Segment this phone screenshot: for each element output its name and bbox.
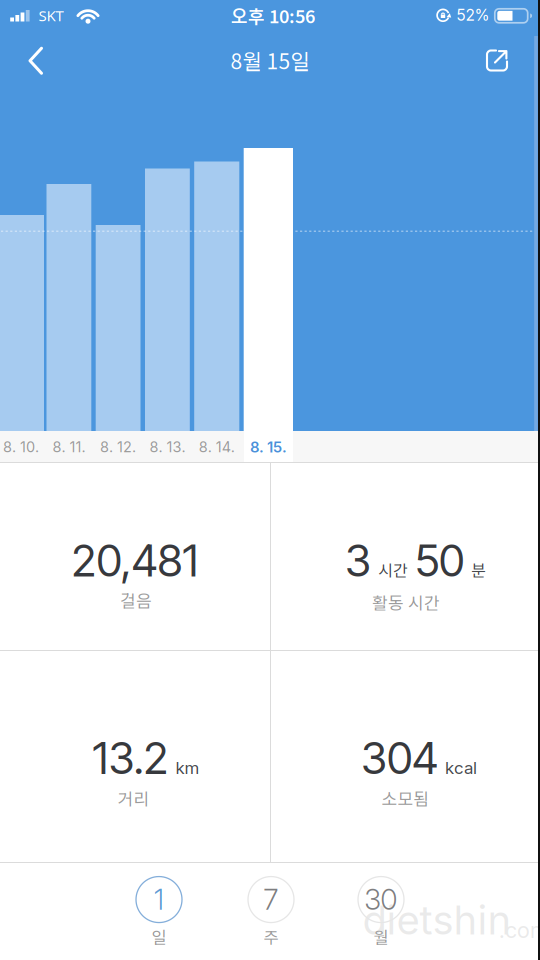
button[interactable]: 8. 13. (149, 438, 185, 456)
staticText: 8. 14. (199, 438, 235, 456)
staticText: 20,481 (71, 534, 198, 587)
button[interactable]: 8. 11. (52, 438, 85, 456)
staticText: .com (499, 917, 540, 943)
staticText: 8. 11. (52, 438, 85, 456)
staticText: 오후 10:56 (231, 2, 315, 29)
staticText: 분 (471, 558, 486, 581)
button[interactable]: Share (475, 38, 519, 82)
staticText: km (175, 757, 199, 778)
button[interactable]: 1 (136, 877, 182, 948)
staticText: 52% (456, 6, 489, 24)
staticText: 13.2 (92, 731, 168, 785)
staticText: 거리 (117, 786, 149, 810)
button[interactable]: 8. 10. (3, 438, 39, 456)
button[interactable]: 30 (358, 877, 404, 948)
button[interactable]: Back (14, 38, 58, 82)
button[interactable]: 7 (248, 877, 294, 948)
staticText: 월 (373, 925, 388, 948)
staticText: 304 (361, 731, 438, 785)
staticText: 일 (151, 925, 166, 948)
staticText: 8월 15일 (230, 45, 309, 75)
staticText: 8. 13. (149, 438, 185, 456)
button[interactable]: 8. 14. (199, 438, 235, 456)
staticText: 시간 (378, 558, 408, 581)
button[interactable]: 8. 15. (250, 438, 287, 456)
staticText: 1 (154, 883, 164, 916)
staticText: 7 (263, 883, 278, 916)
staticText: 걸음 (120, 588, 152, 612)
staticText: 3 (345, 534, 371, 587)
staticText: 50 (415, 534, 464, 587)
staticText: 8. 15. (250, 438, 287, 456)
button[interactable]: 8. 12. (100, 438, 136, 456)
staticText: 주 (263, 925, 278, 948)
staticText: kcal (445, 757, 477, 778)
staticText: 30 (364, 883, 397, 916)
staticText: SKT (38, 5, 63, 25)
staticText: dietshin (362, 896, 511, 944)
staticText: 활동 시간 (372, 590, 440, 614)
staticText: 8. 12. (100, 438, 136, 456)
staticText: 8. 10. (3, 438, 39, 456)
staticText: 소모됨 (381, 786, 429, 810)
